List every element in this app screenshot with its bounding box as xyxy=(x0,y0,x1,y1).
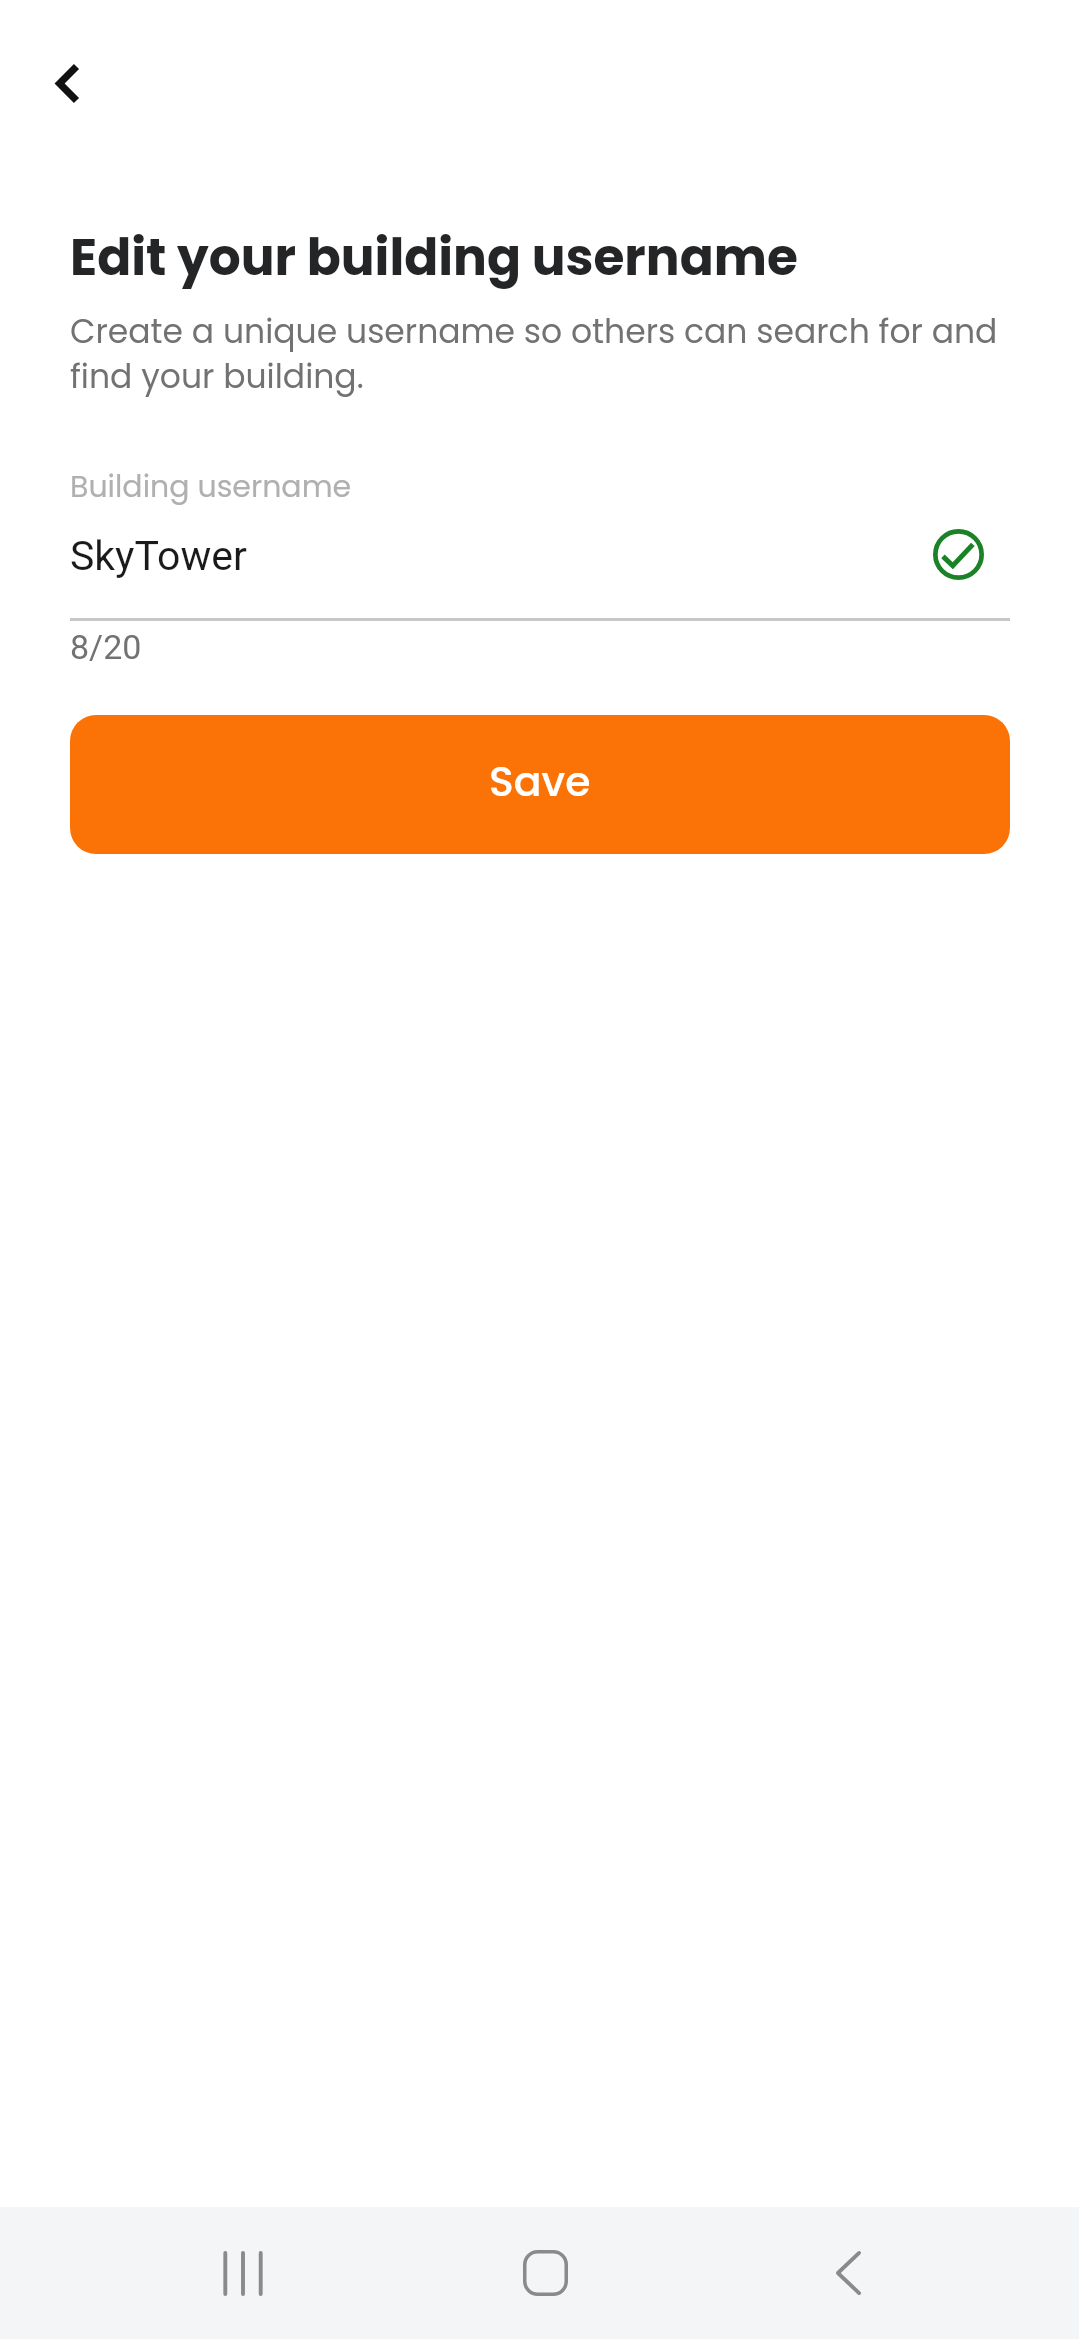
button[interactable]: Save xyxy=(70,715,1010,854)
button[interactable]: Home xyxy=(485,2207,605,2339)
staticText: SkyTower xyxy=(70,530,933,580)
button[interactable]: Back xyxy=(19,45,115,122)
staticText: Save xyxy=(489,761,591,809)
staticText: Edit your building username xyxy=(70,228,798,292)
button[interactable]: Recent apps xyxy=(183,2207,303,2339)
staticText: Create a unique username so others can s… xyxy=(70,310,1010,400)
staticText: Building username xyxy=(70,471,352,507)
button[interactable]: Back xyxy=(788,2207,908,2339)
staticText: 8/20 xyxy=(70,627,142,667)
